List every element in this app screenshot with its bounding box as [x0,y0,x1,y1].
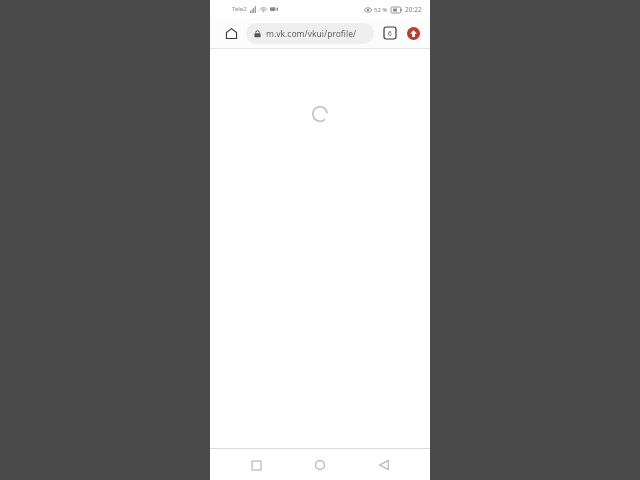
staticText: 6 [388,29,392,38]
staticText: m.vk.com/vkui/profile/ [266,28,357,40]
button[interactable]: Home [307,452,333,478]
button[interactable]: Menu [404,24,422,42]
button[interactable]: Recents [243,452,269,478]
button[interactable]: Tabs [381,24,399,42]
staticText: 52 % [374,6,388,14]
button[interactable]: m.vk.com/vkui/profile/ [246,23,374,44]
staticText: 20:22 [405,5,422,14]
button[interactable]: Back [371,452,397,478]
staticText: Tele2 [232,5,247,13]
button[interactable]: Home [220,22,242,44]
